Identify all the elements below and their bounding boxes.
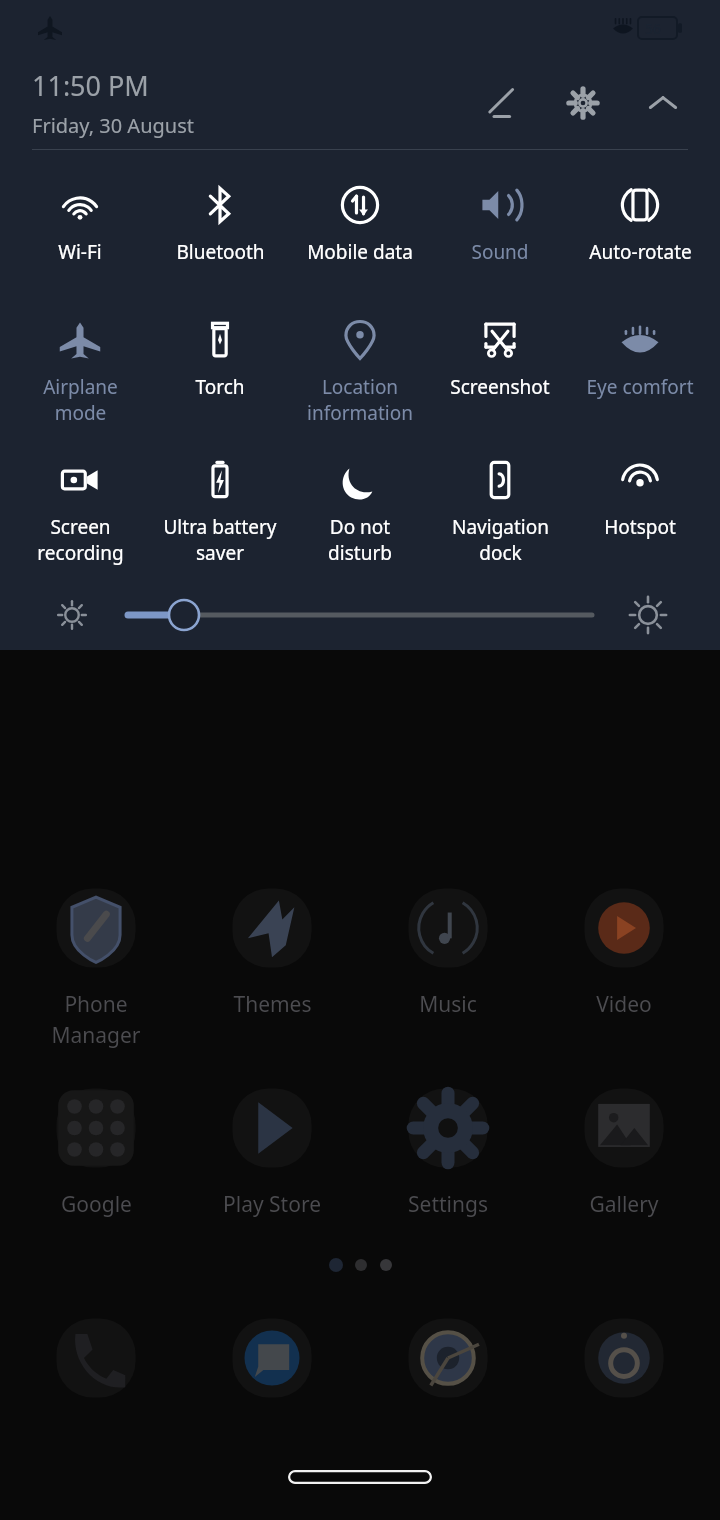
button[interactable]: Music [372,880,524,1019]
staticText: Video [596,990,652,1019]
staticText: Wi-Fi [58,239,102,265]
button[interactable]: chrome [400,1310,496,1406]
staticText: Gallery [589,1190,659,1219]
staticText: Navigation dock [452,514,549,566]
button[interactable]: Edit [475,75,531,131]
button[interactable]: Increase brightness [620,587,676,643]
button[interactable]: Screen recording [10,450,150,585]
staticText: Screenshot [450,374,550,400]
staticText: Play Store [223,1190,321,1219]
staticText: Music [419,990,477,1019]
staticText: Torch [195,374,245,400]
button[interactable]: Themes [196,880,348,1019]
button[interactable]: Auto-rotate [570,175,710,300]
staticText: Ultra battery saver [163,514,277,566]
button[interactable]: Wi-Fi [10,175,150,300]
staticText: Mobile data [307,239,413,265]
button[interactable]: Mobile data [290,175,430,300]
button[interactable]: Decrease brightness [44,587,100,643]
staticText: Auto-rotate [589,239,692,265]
button[interactable]: Hotspot [570,450,710,585]
button[interactable]: Do not disturb [290,450,430,585]
staticText: Bluetooth [176,239,265,265]
button[interactable]: Torch [150,310,290,445]
staticText: Friday, 30 August [32,112,194,139]
button[interactable]: Screenshot [430,310,570,445]
staticText: Do not disturb [328,514,392,566]
button[interactable]: Phone Manager [20,880,172,1049]
button[interactable]: phone [48,1310,144,1406]
button[interactable]: Location information [290,310,430,445]
staticText: Settings [408,1190,488,1219]
staticText: Sound [471,239,529,265]
button[interactable]: Settings [555,75,611,131]
staticText: Phone Manager [51,990,141,1049]
button[interactable]: Eye comfort [570,310,710,445]
staticText: Themes [233,990,312,1019]
button[interactable]: camera [576,1310,672,1406]
button[interactable]: Google [20,1080,172,1219]
staticText: Location information [307,374,413,426]
button[interactable]: Collapse [635,75,691,131]
button[interactable]: Settings [372,1080,524,1219]
button[interactable]: Navigation dock [430,450,570,585]
staticText: Hotspot [604,514,676,540]
button[interactable]: Brightness [112,584,608,646]
staticText: Airplane mode [43,374,118,426]
button[interactable]: Gallery [548,1080,700,1219]
button[interactable]: Sound [430,175,570,300]
button[interactable]: Airplane mode [10,310,150,445]
button[interactable]: Home [288,1470,432,1484]
staticText: Google [61,1190,132,1219]
staticText: Eye comfort [586,374,694,400]
button[interactable]: Bluetooth [150,175,290,300]
button[interactable]: Video [548,880,700,1019]
button[interactable]: msg [224,1310,320,1406]
button[interactable]: Ultra battery saver [150,450,290,585]
staticText: 11:50 PM [32,67,149,104]
staticText: Screen recording [37,514,124,566]
button[interactable]: Play Store [196,1080,348,1219]
